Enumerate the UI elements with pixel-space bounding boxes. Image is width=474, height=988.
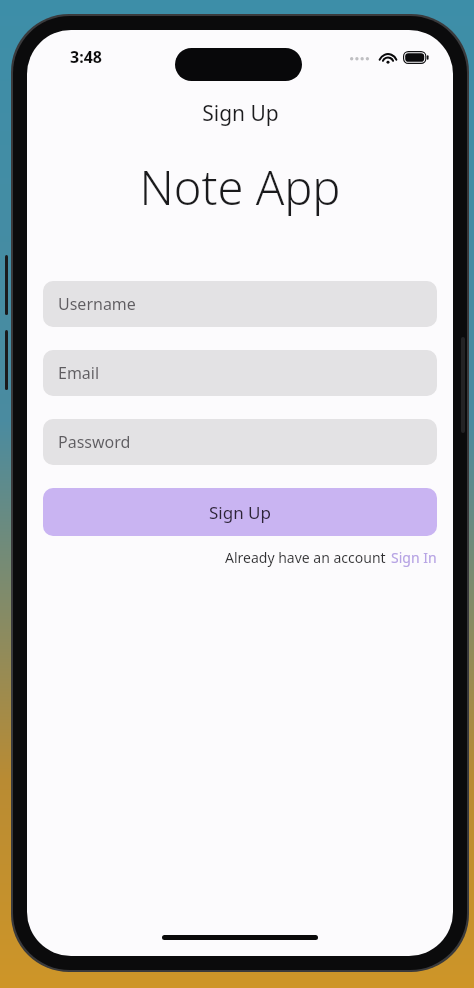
staticText: Note App: [139, 155, 341, 219]
button[interactable]: Sign In: [391, 548, 437, 567]
staticText: Sign Up: [209, 501, 271, 524]
staticText: 3:48: [70, 46, 102, 68]
staticText: Sign In: [391, 548, 437, 567]
button[interactable]: Username: [43, 281, 437, 327]
staticText: Already have an account: [225, 548, 386, 567]
staticText: Username: [58, 293, 136, 315]
staticText: Password: [58, 431, 131, 453]
button[interactable]: Email: [43, 350, 437, 396]
button[interactable]: Password: [43, 419, 437, 465]
staticText: Sign Up: [202, 99, 279, 128]
button[interactable]: Sign Up: [43, 488, 437, 536]
staticText: Email: [58, 362, 100, 384]
